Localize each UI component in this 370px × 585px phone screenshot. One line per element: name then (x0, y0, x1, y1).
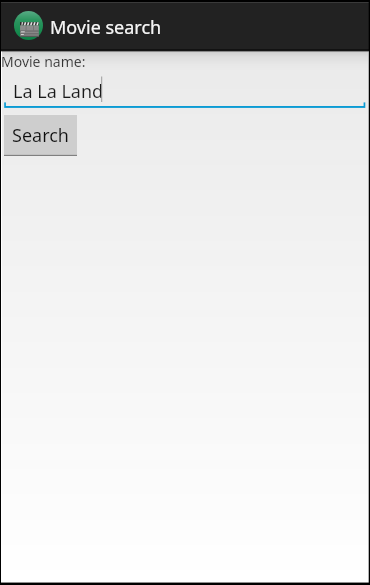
button[interactable]: Search (4, 115, 77, 156)
staticText: Search (12, 123, 69, 148)
staticText: La La Land (13, 79, 104, 104)
staticText: Movie name: (1, 52, 86, 71)
button[interactable]: La La Land (0, 71, 370, 111)
button[interactable]: Movie search app icon (0, 0, 370, 50)
other: Movie search app icon (14, 11, 43, 40)
staticText: Movie search (50, 15, 162, 40)
